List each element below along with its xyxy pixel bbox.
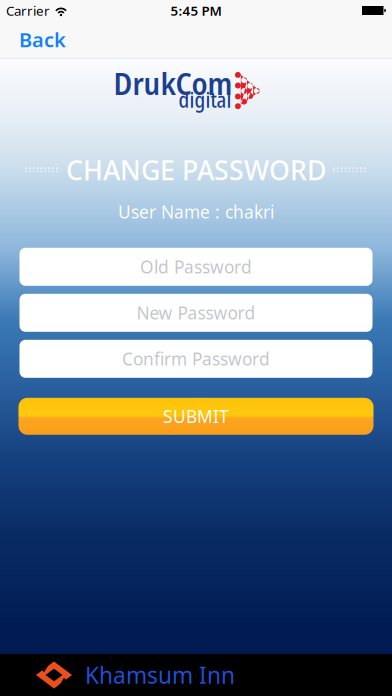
staticText: User Name : chakri xyxy=(118,200,274,223)
staticText: 5:45 PM xyxy=(170,2,221,19)
button[interactable]: SUBMIT xyxy=(18,398,373,435)
staticText: Confirm Password xyxy=(122,347,270,370)
button[interactable]: Confirm Password xyxy=(19,340,372,378)
staticText: Carrier xyxy=(6,2,50,19)
button[interactable]: Old Password xyxy=(19,248,372,286)
staticText: DrukCom xyxy=(113,61,232,104)
button[interactable]: Back xyxy=(0,26,66,53)
staticText: Khamsum Inn xyxy=(85,660,235,690)
staticText: Back xyxy=(19,26,66,53)
staticText: New Password xyxy=(136,301,255,324)
staticText: CHANGE PASSWORD xyxy=(66,152,326,187)
button[interactable]: New Password xyxy=(19,294,372,332)
staticText: SUBMIT xyxy=(163,405,229,428)
staticText: digital xyxy=(178,86,231,114)
staticText: Old Password xyxy=(140,255,252,278)
